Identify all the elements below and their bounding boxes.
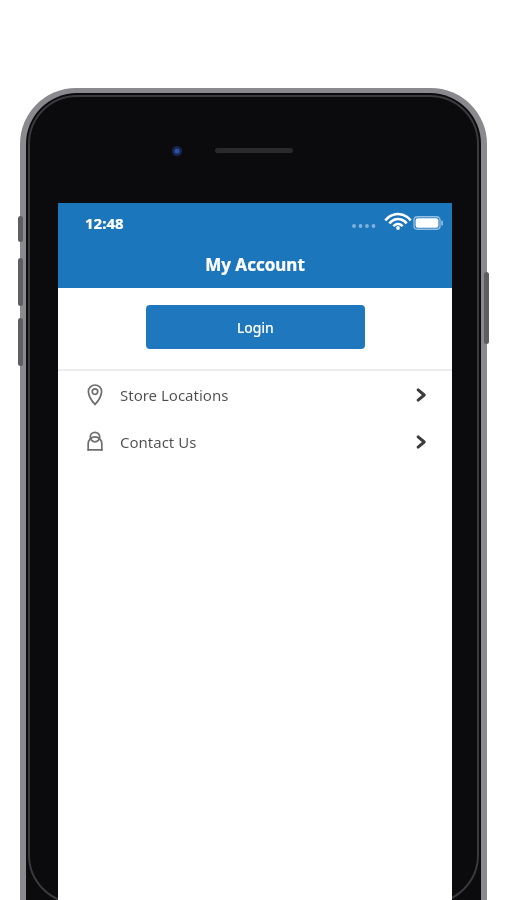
button[interactable]: Contact Us xyxy=(58,418,452,465)
staticText: Store Locations xyxy=(120,385,229,405)
button[interactable]: Login xyxy=(146,305,365,349)
button[interactable]: Store Locations xyxy=(58,371,452,418)
staticText: My Account xyxy=(58,253,452,276)
staticText: Login xyxy=(237,318,274,337)
staticText: Contact Us xyxy=(120,432,197,452)
staticText: 12:48 xyxy=(85,213,124,233)
